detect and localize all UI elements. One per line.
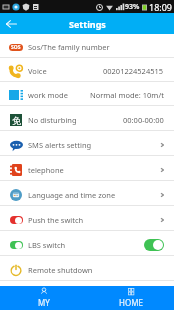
staticText: Sos/The family number	[28, 42, 110, 52]
button[interactable]: MY	[0, 286, 87, 310]
button[interactable]: 免	[0, 106, 174, 131]
staticText: Language and time zone	[28, 190, 116, 200]
staticText: LBS switch	[28, 240, 66, 250]
button[interactable]: telephone	[0, 156, 174, 181]
staticText: Push the switch	[28, 215, 84, 225]
staticText: MY	[38, 297, 50, 308]
staticText: No disturbing	[28, 115, 77, 125]
staticText: 免	[12, 115, 21, 126]
staticText: Remote shutdown	[28, 265, 93, 275]
staticText: 00:00-00:00	[123, 115, 164, 125]
button[interactable]: SMS alerts setting	[0, 131, 174, 156]
button[interactable]: HOME	[87, 286, 174, 310]
button[interactable]: Voice	[0, 58, 174, 82]
staticText: SMS alerts setting	[28, 140, 92, 150]
button[interactable]: Push the switch	[0, 206, 174, 231]
staticText: 18:09	[149, 1, 173, 13]
button[interactable]: Language and time zone	[0, 181, 174, 206]
button[interactable]: LBS switch	[0, 231, 174, 256]
button[interactable]: SOS	[0, 34, 174, 58]
staticText: Voice	[28, 66, 47, 76]
staticText: Normal mode: 10m/t	[90, 90, 164, 100]
staticText: telephone	[28, 165, 64, 175]
staticText: Settings	[69, 18, 106, 30]
button[interactable]: work mode	[0, 82, 174, 106]
button[interactable]: Back	[0, 13, 22, 34]
staticText: work mode	[28, 90, 68, 100]
staticText: 93%	[125, 2, 140, 12]
button[interactable]: LBS switch	[144, 239, 164, 251]
staticText: HOME	[119, 297, 143, 308]
staticText: 00201224524515	[103, 66, 164, 76]
button[interactable]: Remote shutdown	[0, 256, 174, 281]
staticText: SOS	[11, 44, 21, 51]
